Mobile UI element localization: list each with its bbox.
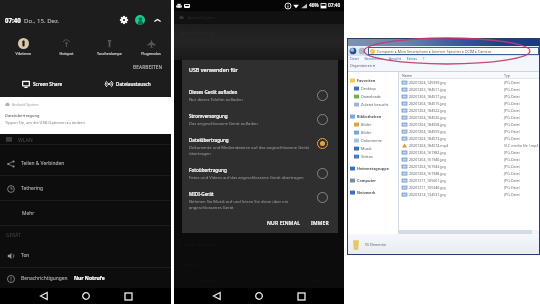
staticText: Fotos und Videos auf das angeschlossene … (189, 175, 304, 181)
button[interactable]: Zuletzt besucht (347, 100, 398, 108)
staticText: Typ (504, 73, 510, 78)
staticText: JPG-Datei (504, 150, 520, 155)
staticText: Mehr (22, 210, 35, 217)
staticText: JPG-Datei (504, 122, 520, 127)
staticText: Bilder (361, 122, 372, 127)
staticText: JPG-Datei (504, 185, 520, 190)
button[interactable]: Stromversorgung (182, 109, 338, 133)
button[interactable]: Tethering (0, 176, 171, 200)
staticText: Favoriten (357, 78, 376, 83)
button[interactable]: 20201211_105601.jpg (399, 177, 540, 184)
button[interactable]: Back (210, 289, 224, 303)
button[interactable]: Netzwerk (347, 188, 398, 196)
staticText: 20201204_161948.jpg (409, 171, 446, 176)
button[interactable]: Mehr (0, 201, 171, 225)
button[interactable]: Videos (347, 152, 398, 160)
staticText: NUR EINMAL (267, 220, 301, 227)
button[interactable]: BEARBEITEN (131, 63, 165, 71)
staticText: Dateiübertragung (5, 113, 40, 118)
button[interactable]: Dieses Gerät aufladen (182, 85, 338, 109)
button[interactable]: Recents (294, 289, 308, 303)
button[interactable]: Dateiaustausch (85, 77, 171, 91)
button[interactable]: Hotspot (45, 38, 88, 56)
button[interactable]: Android System (0, 97, 171, 134)
button[interactable]: Dateiübertragung (182, 133, 338, 163)
staticText: GERÄT (6, 232, 21, 238)
button[interactable]: 20201204_161940.jpg (399, 156, 540, 163)
button[interactable]: NUR EINMAL (264, 218, 304, 229)
button[interactable]: Recents (121, 289, 135, 303)
button[interactable]: 20201204_184559.jpg (399, 128, 540, 135)
button[interactable]: 20201204_184574.mp4 (399, 142, 540, 149)
button[interactable]: 20201211_105340.jpg (399, 184, 540, 191)
button[interactable]: MIDI-Gerät (182, 187, 338, 217)
staticText: Dateiübertragung (189, 137, 229, 143)
button[interactable]: Bilder (347, 120, 398, 128)
button[interactable]: Taschenlampe (88, 38, 131, 56)
button[interactable]: Teilen & Verbinden (0, 151, 171, 175)
button[interactable]: 20201204_184573.jpg (399, 135, 540, 142)
staticText: Android System (12, 102, 39, 107)
button[interactable]: 20201204_184522.jpg (399, 107, 540, 114)
button[interactable]: 20201204_184558.jpg (399, 121, 540, 128)
staticText: 20201204_161940.jpg (409, 157, 446, 162)
button[interactable]: User (135, 15, 145, 25)
button[interactable]: 20201214_134531.jpg (399, 191, 540, 198)
button[interactable]: Back (37, 289, 51, 303)
button[interactable]: Ton (0, 243, 171, 267)
staticText: WLAN (18, 136, 33, 143)
button[interactable]: Favoriten (347, 76, 398, 84)
button[interactable]: 20201204_161982.jpg (399, 149, 540, 156)
button[interactable]: Home (252, 289, 266, 303)
button[interactable]: Settings (118, 14, 130, 26)
button[interactable]: Screen Share (0, 77, 85, 91)
button[interactable]: Collapse (152, 15, 163, 26)
button[interactable]: Downloads (347, 92, 398, 100)
button[interactable]: 20201203_184511.jpg (399, 86, 540, 93)
button[interactable]: 20201204_184526.jpg (399, 114, 540, 121)
button[interactable]: Fotoübertragung (182, 163, 338, 187)
staticText: JPG-Datei (504, 164, 520, 169)
button[interactable]: 20201204_145939.jpg (399, 79, 540, 86)
staticText: 55 Elemente (365, 242, 386, 247)
staticText: 46% (309, 2, 319, 9)
button[interactable]: 20201204_184517.jpg (399, 93, 540, 100)
button[interactable]: Desktop (347, 84, 398, 92)
staticText: Videos (361, 154, 373, 159)
staticText: 20201211_105601.jpg (409, 178, 446, 183)
button[interactable]: Vibrieren (2, 38, 45, 56)
staticText: 20201204_184517.jpg (409, 94, 446, 99)
staticText: JPG-Datei (504, 129, 520, 134)
staticText: Musik (361, 146, 372, 151)
staticText: Android System (188, 15, 215, 20)
staticText: Nur dieses Telefon aufladen (189, 97, 243, 103)
button[interactable]: 20201204_184515.jpg (399, 100, 540, 107)
staticText: Zuletzt besucht (361, 102, 389, 107)
staticText: Netzwerk (357, 190, 376, 195)
button[interactable]: 20201204_161948.jpg (399, 170, 540, 177)
staticText: Nur Notrufe (74, 275, 105, 282)
button[interactable]: Computer (347, 176, 398, 184)
button[interactable]: Musik (347, 144, 398, 152)
button[interactable]: Benachrichtigungen (0, 268, 171, 288)
button[interactable]: Bilder (347, 128, 398, 136)
button[interactable]: Flugmodus (131, 38, 171, 56)
button[interactable]: Home (79, 289, 93, 303)
staticText: Computer ▸ Mein Smartphone ▸ Interner Sp… (377, 49, 492, 54)
button[interactable]: 20201204_161943.jpg (399, 163, 540, 170)
button[interactable]: Dokumente (347, 136, 398, 144)
staticText: 20201214_134531.jpg (409, 192, 446, 197)
button[interactable]: Bibliotheken (347, 112, 398, 120)
button[interactable]: Heimnetzgruppe (347, 164, 398, 172)
staticText: Taschenlampe (88, 51, 131, 56)
button[interactable]: IMMER (308, 218, 332, 229)
staticText: JPG-Datei (504, 108, 520, 113)
staticText: Bilder (361, 130, 372, 135)
staticText: Flugmodus (131, 51, 171, 56)
staticText: Stromversorgung (189, 113, 228, 119)
staticText: JPG-Datei (504, 171, 520, 176)
